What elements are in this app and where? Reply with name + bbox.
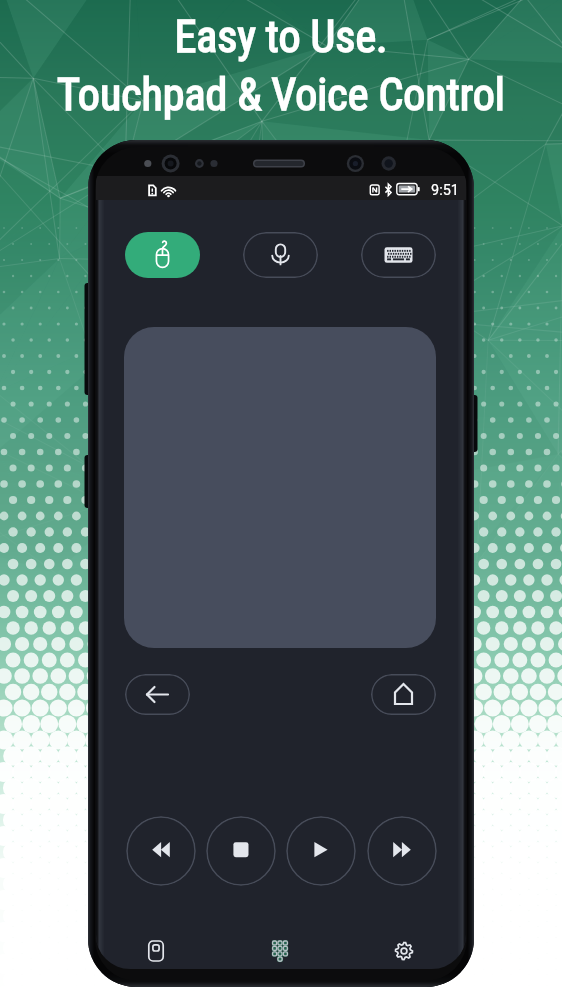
staticText: Easy to Use. [174,11,388,63]
button[interactable]: Rewind [126,816,196,886]
button[interactable]: Touchpad [134,929,178,973]
staticText: 9:51 [431,182,459,199]
button[interactable]: Home [371,674,436,715]
button[interactable]: Back [125,674,190,715]
button[interactable]: Touchpad [124,327,436,648]
button[interactable]: Play [286,816,356,886]
button[interactable]: Dialpad [258,929,302,973]
button[interactable]: Voice mode [243,232,318,278]
button[interactable]: Stop [206,816,276,886]
button[interactable]: Fast forward [367,816,437,886]
button[interactable]: Keyboard mode [361,232,436,278]
staticText: Touchpad & Voice Control [57,69,505,121]
button[interactable]: Mouse mode [125,232,200,278]
button[interactable]: Settings [382,929,426,973]
